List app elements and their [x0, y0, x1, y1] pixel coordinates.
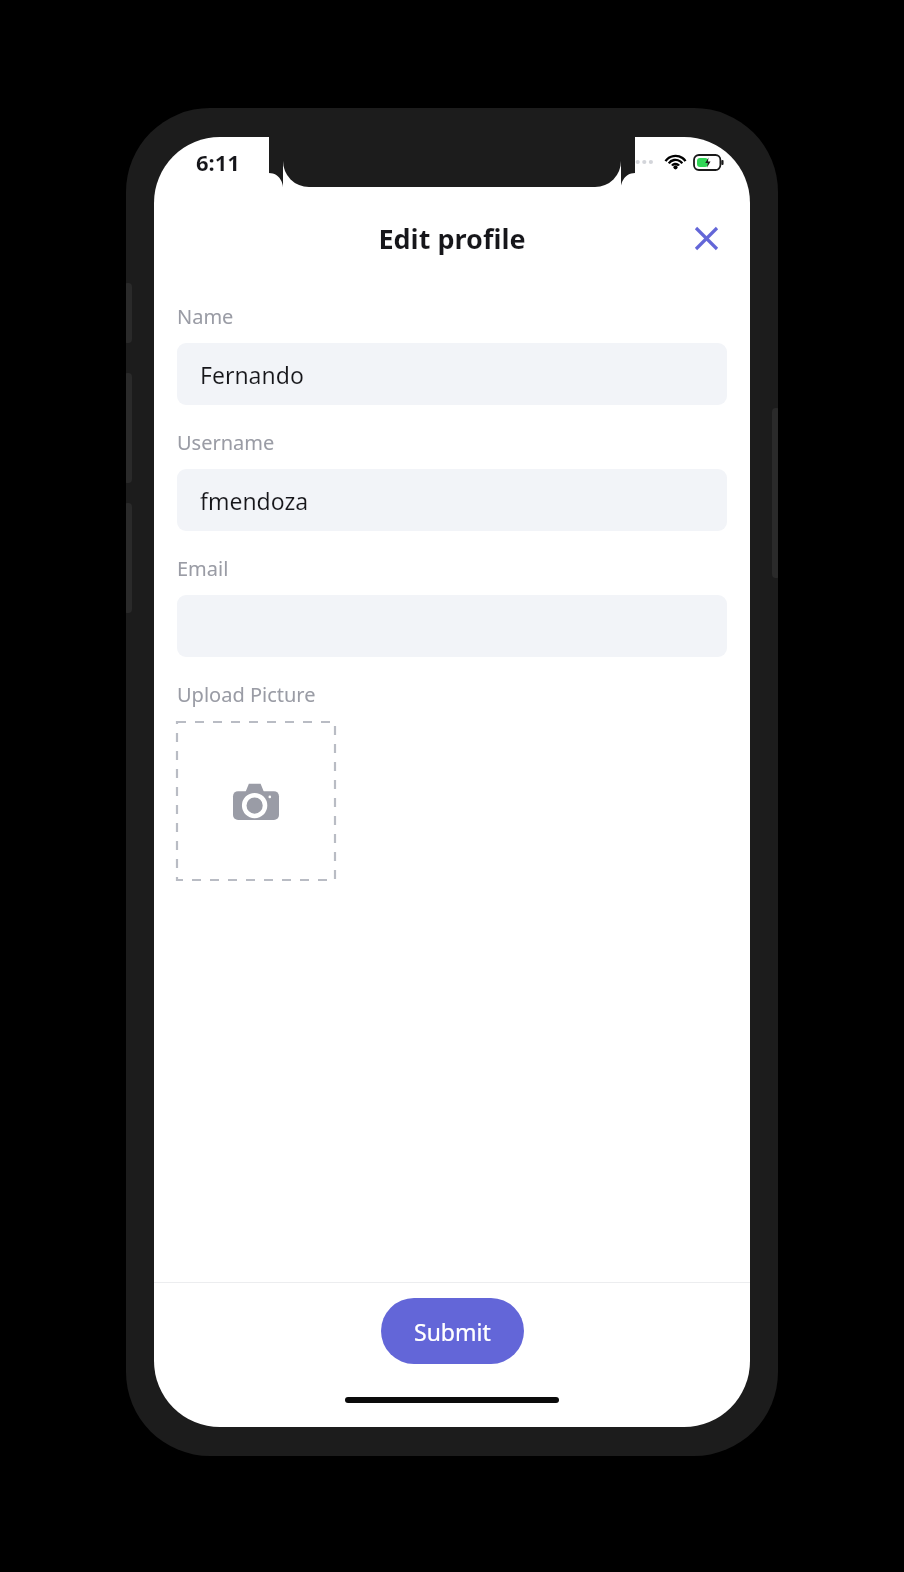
button[interactable]: Fernando — [177, 343, 727, 405]
staticText: Username — [177, 429, 275, 456]
staticText: Upload Picture — [177, 681, 316, 708]
staticText: Name — [177, 303, 234, 330]
staticText: fmendoza — [200, 485, 309, 516]
staticText: Submit — [414, 1316, 491, 1347]
staticText: 6:11 — [196, 147, 240, 177]
button[interactable]: Close — [684, 216, 728, 260]
button[interactable]: fmendoza — [177, 469, 727, 531]
staticText: Edit profile — [378, 220, 526, 257]
staticText: Fernando — [200, 359, 304, 390]
button[interactable]: Submit — [381, 1298, 524, 1364]
staticText: Email — [177, 555, 229, 582]
button[interactable]: Upload picture — [177, 722, 335, 880]
